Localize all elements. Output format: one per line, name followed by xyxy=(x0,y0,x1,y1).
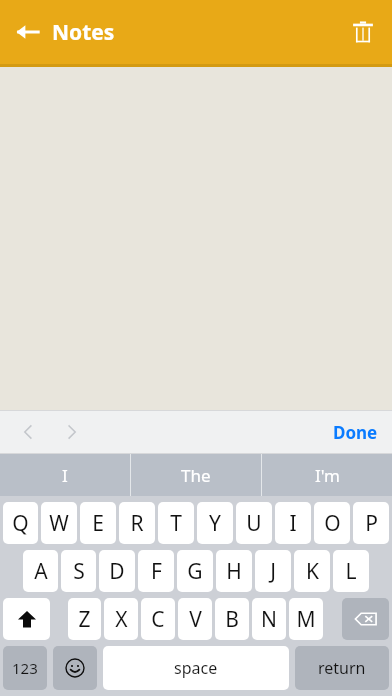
staticText: H xyxy=(226,557,242,586)
button[interactable]: Back xyxy=(4,8,52,56)
staticText: L xyxy=(345,557,357,586)
staticText: I xyxy=(62,464,68,487)
staticText: K xyxy=(306,557,319,586)
staticText: Q xyxy=(12,509,29,538)
staticText: C xyxy=(151,605,165,634)
button[interactable]: V xyxy=(178,598,212,640)
button[interactable]: J xyxy=(255,550,291,592)
button[interactable]: Previous field xyxy=(8,412,48,452)
button[interactable]: Backspace xyxy=(342,598,389,640)
button[interactable]: The xyxy=(131,454,261,496)
staticText: Z xyxy=(78,605,91,634)
staticText: return xyxy=(318,657,366,679)
staticText: E xyxy=(92,509,104,538)
button[interactable]: H xyxy=(216,550,252,592)
button[interactable]: K xyxy=(294,550,330,592)
button[interactable]: Done xyxy=(325,415,386,450)
staticText: O xyxy=(324,509,341,538)
button[interactable]: A xyxy=(23,550,58,592)
button[interactable]: U xyxy=(236,502,272,544)
staticText: 123 xyxy=(12,658,38,678)
button[interactable]: R xyxy=(119,502,155,544)
staticText: Done xyxy=(333,421,378,444)
staticText: V xyxy=(189,605,202,634)
button[interactable]: C xyxy=(141,598,175,640)
button[interactable]: G xyxy=(177,550,213,592)
staticText: B xyxy=(225,605,239,634)
button[interactable]: F xyxy=(138,550,174,592)
staticText: U xyxy=(246,509,262,538)
button[interactable]: D xyxy=(99,550,135,592)
button[interactable]: P xyxy=(353,502,389,544)
button[interactable]: Z xyxy=(68,598,101,640)
staticText: D xyxy=(109,557,125,586)
button[interactable]: I xyxy=(275,502,311,544)
button[interactable]: 123 xyxy=(3,646,47,690)
button[interactable]: L xyxy=(333,550,369,592)
staticText: I'm xyxy=(315,464,340,487)
button[interactable]: T xyxy=(158,502,194,544)
staticText: Notes xyxy=(52,18,115,47)
button[interactable]: I xyxy=(0,454,130,496)
staticText: W xyxy=(49,509,69,538)
staticText: X xyxy=(115,605,128,634)
staticText: T xyxy=(170,509,182,538)
staticText: J xyxy=(270,557,276,586)
button[interactable]: Y xyxy=(197,502,233,544)
button[interactable]: return xyxy=(295,646,389,690)
button[interactable]: Next field xyxy=(52,412,92,452)
button[interactable]: Shift xyxy=(3,598,50,640)
button[interactable]: O xyxy=(314,502,350,544)
staticText: N xyxy=(261,605,277,634)
button[interactable]: X xyxy=(104,598,138,640)
staticText: M xyxy=(296,605,316,634)
button[interactable]: Emoji xyxy=(53,646,97,690)
button[interactable]: Q xyxy=(3,502,38,544)
button[interactable]: I'm xyxy=(262,454,392,496)
button[interactable]: M xyxy=(289,598,323,640)
button[interactable]: Delete xyxy=(340,9,386,55)
staticText: I xyxy=(289,509,297,538)
staticText: space xyxy=(174,657,218,679)
staticText: F xyxy=(151,557,162,586)
staticText: G xyxy=(187,557,203,586)
staticText: R xyxy=(130,509,144,538)
button[interactable]: space xyxy=(103,646,289,690)
staticText: P xyxy=(365,509,378,538)
staticText: A xyxy=(34,557,48,586)
staticText: Y xyxy=(209,509,221,538)
button[interactable]: B xyxy=(215,598,249,640)
staticText: The xyxy=(181,464,211,487)
button[interactable]: E xyxy=(80,502,116,544)
button[interactable]: S xyxy=(61,550,96,592)
button[interactable]: W xyxy=(41,502,77,544)
staticText: S xyxy=(73,557,85,586)
button[interactable]: N xyxy=(252,598,286,640)
